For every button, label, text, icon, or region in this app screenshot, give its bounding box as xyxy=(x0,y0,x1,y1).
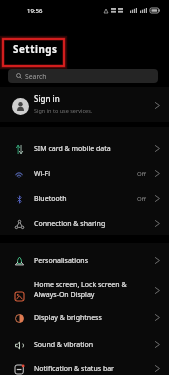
staticText: SIM card & mobile data xyxy=(34,144,111,154)
button[interactable]: Connection & sharing xyxy=(0,211,169,236)
staticText: Wi-Fi xyxy=(34,169,51,179)
staticText: Off xyxy=(137,195,146,203)
staticText: Bluetooth xyxy=(34,194,67,204)
staticText: Home screen, Lock screen & xyxy=(34,280,127,290)
staticText: Sign in xyxy=(34,93,60,104)
staticText: Sound & vibration xyxy=(34,340,94,350)
button[interactable]: Wi-Fi xyxy=(0,161,169,186)
staticText: Sign in to use services. xyxy=(34,107,93,114)
button[interactable]: Home screen, Lock screen & xyxy=(0,273,169,307)
staticText: 19:56 xyxy=(27,7,43,15)
staticText: Notification & status bar xyxy=(34,364,115,374)
button[interactable]: Display & brightness xyxy=(0,305,169,330)
button[interactable]: Bluetooth xyxy=(0,186,169,211)
staticText: Display & brightness xyxy=(34,313,102,323)
staticText: Off xyxy=(137,170,146,178)
button[interactable]: Sound & vibration xyxy=(0,332,169,357)
button[interactable]: Sign in xyxy=(0,87,169,122)
button[interactable]: Search xyxy=(8,69,158,83)
staticText: Connection & sharing xyxy=(34,219,106,229)
staticText: Always-On Display xyxy=(34,290,95,300)
staticText: Personalisations xyxy=(34,256,89,266)
staticText: Settings xyxy=(13,43,58,56)
button[interactable]: Personalisations xyxy=(0,248,169,273)
button[interactable]: Notification & status bar xyxy=(0,356,169,375)
staticText: Search xyxy=(25,72,47,81)
button[interactable]: SIM card & mobile data xyxy=(0,136,169,161)
